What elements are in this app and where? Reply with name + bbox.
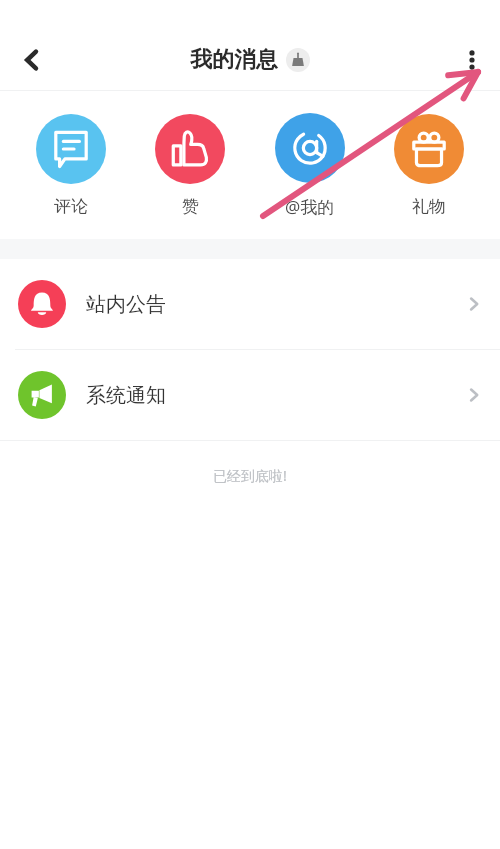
staticText: 评论 (54, 196, 88, 217)
button[interactable]: @我的 (262, 113, 358, 218)
staticText: 我的消息 (190, 46, 278, 74)
staticText: 礼物 (412, 196, 446, 217)
button[interactable]: Clear messages (286, 48, 310, 72)
button[interactable]: 礼物 (381, 114, 477, 217)
button[interactable]: 站内公告 (0, 259, 500, 349)
button[interactable]: More options (450, 38, 494, 82)
staticText: 已经到底啦! (0, 466, 500, 485)
staticText: 系统通知 (86, 383, 166, 408)
staticText: @我的 (285, 195, 335, 218)
button[interactable]: Back (8, 36, 56, 84)
button[interactable]: 赞 (142, 114, 238, 217)
button[interactable]: 系统通知 (0, 350, 500, 440)
staticText: 站内公告 (86, 292, 166, 317)
staticText: 赞 (182, 196, 199, 217)
button[interactable]: 评论 (23, 114, 119, 217)
